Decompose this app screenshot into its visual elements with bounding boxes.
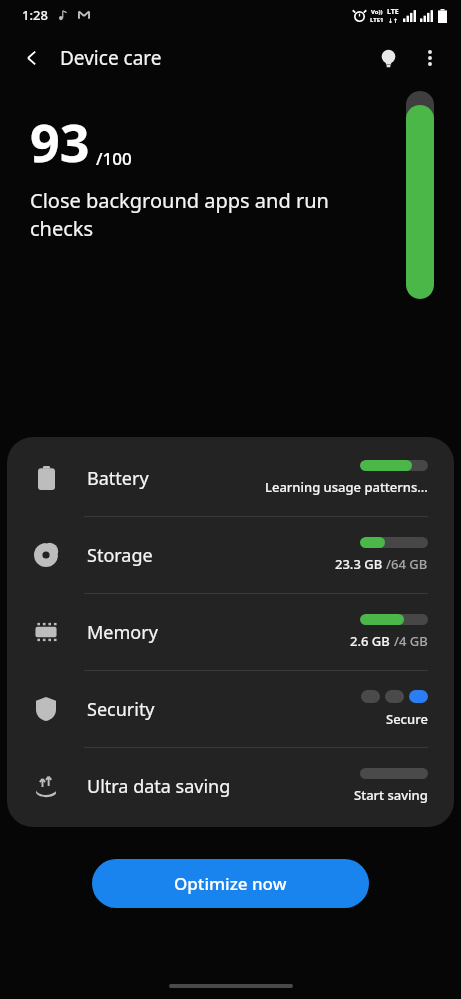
- staticText: Storage: [87, 543, 153, 568]
- staticText: /4 GB: [394, 632, 428, 650]
- staticText: 93: [30, 106, 90, 177]
- staticText: /100: [96, 147, 132, 170]
- staticText: 1:28: [22, 6, 48, 24]
- staticText: LTE1: [370, 16, 384, 24]
- button[interactable]: Ultra data saving: [7, 748, 454, 824]
- staticText: Learning usage patterns…: [265, 478, 428, 496]
- staticText: Secure: [386, 710, 428, 728]
- staticText: Security: [87, 697, 155, 722]
- staticText: 2.6 GB: [350, 632, 394, 650]
- button[interactable]: Optimize now: [92, 859, 369, 908]
- button[interactable]: Security: [7, 671, 454, 747]
- button[interactable]: More options: [409, 37, 451, 79]
- staticText: Vo)): [371, 8, 383, 16]
- staticText: Close background apps and run checks: [30, 187, 370, 242]
- button[interactable]: Tips: [367, 37, 409, 79]
- button[interactable]: Memory: [7, 594, 454, 670]
- staticText: Optimize now: [174, 872, 287, 895]
- staticText: 23.3 GB: [335, 555, 386, 573]
- staticText: /64 GB: [386, 555, 428, 573]
- staticText: Ultra data saving: [87, 774, 231, 799]
- button[interactable]: Back: [14, 42, 50, 74]
- staticText: Start saving: [354, 786, 428, 804]
- staticText: LTE: [387, 7, 399, 17]
- button[interactable]: Battery: [7, 440, 454, 516]
- staticText: Memory: [87, 620, 158, 645]
- button[interactable]: Storage: [7, 517, 454, 593]
- staticText: Device care: [60, 45, 162, 71]
- staticText: ↓↑: [388, 17, 399, 24]
- staticText: Battery: [87, 466, 149, 491]
